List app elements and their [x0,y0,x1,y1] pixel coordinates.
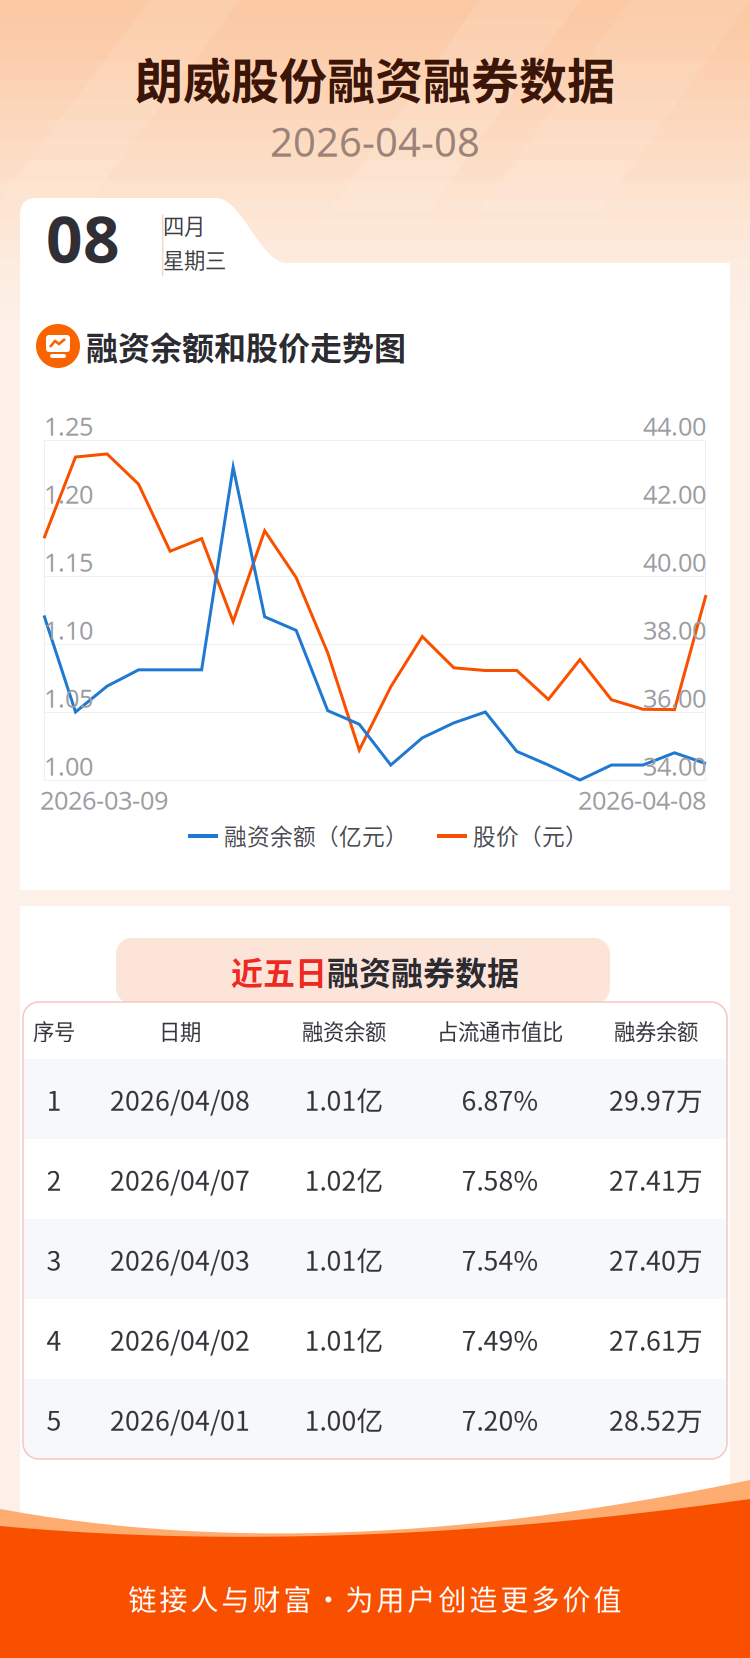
staticText: 2026-04-08 [578,783,706,817]
staticText: 27.41万 [609,1160,703,1198]
staticText: 日期 [159,1015,201,1046]
staticText: 融券余额 [614,1015,698,1046]
staticText: 29.97万 [609,1080,703,1118]
staticText: 1.15 [44,545,93,579]
staticText: 08 [46,194,120,282]
staticText: 1.01亿 [304,1240,383,1278]
staticText: 27.61万 [609,1320,703,1358]
staticText: 3 [46,1240,61,1278]
staticText: 链接人与财富·为用户创造更多价值 [128,1578,621,1618]
staticText: 42.00 [643,477,706,511]
staticText: 2026/04/08 [110,1080,250,1118]
staticText: 7.58% [461,1160,538,1198]
staticText: 7.54% [461,1240,538,1278]
staticText: 40.00 [643,545,706,579]
staticText: 2026/04/02 [110,1320,250,1358]
staticText: 2026-04-08 [270,114,480,168]
staticText: 融资余额（亿元） [224,819,408,851]
staticText: 2 [46,1160,61,1198]
staticText: 2026-03-09 [40,783,168,817]
staticText: 2026/04/01 [110,1400,250,1438]
staticText: 星期三 [163,244,226,274]
staticText: 1.01亿 [304,1320,383,1358]
staticText: 1.05 [44,681,93,715]
staticText: 6.87% [461,1080,538,1118]
staticText: 7.49% [461,1320,538,1358]
staticText: 2026/04/03 [110,1240,250,1278]
staticText: 占流通市值比 [437,1015,563,1046]
staticText: 1.10 [44,613,93,647]
staticText: 1.25 [44,409,93,443]
staticText: 27.40万 [609,1240,703,1278]
staticText: 1.00亿 [304,1400,383,1438]
staticText: 融资融券数据 [327,948,519,994]
staticText: 7.20% [461,1400,538,1438]
staticText: 44.00 [643,409,706,443]
staticText: 1.02亿 [304,1160,383,1198]
staticText: 2026/04/07 [110,1160,250,1198]
staticText: 序号 [33,1015,75,1046]
staticText: 1.20 [44,477,93,511]
staticText: 融资余额 [302,1015,386,1046]
staticText: 38.00 [643,613,706,647]
staticText: 四月 [163,210,205,240]
staticText: 28.52万 [609,1400,703,1438]
staticText: 36.00 [643,681,706,715]
staticText: 1 [46,1080,61,1118]
staticText: 34.00 [643,749,706,783]
staticText: 1.00 [44,749,93,783]
staticText: 朗威股份融资融券数据 [135,43,615,112]
staticText: 融资余额和股价走势图 [86,323,406,369]
staticText: 1.01亿 [304,1080,383,1118]
staticText: 4 [46,1320,61,1358]
staticText: 5 [46,1400,61,1438]
staticText: 近五日 [231,948,327,994]
staticText: 股价（元） [473,819,588,851]
